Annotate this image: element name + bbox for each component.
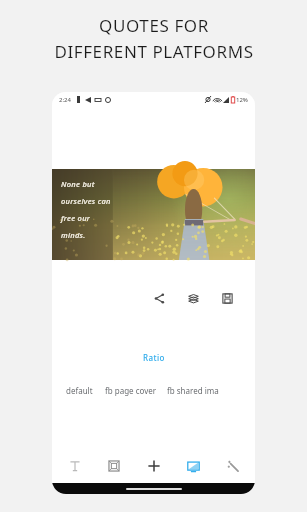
staticText: None but xyxy=(61,179,95,189)
staticText: Ratio xyxy=(143,352,165,363)
button[interactable]: Background xyxy=(176,449,210,483)
button[interactable]: Frame xyxy=(97,449,131,483)
button[interactable]: Text xyxy=(58,449,92,483)
staticText: 12% xyxy=(236,96,248,104)
staticText: fb page cover xyxy=(105,385,157,396)
button[interactable]: Save xyxy=(217,288,237,308)
staticText: QUOTES FOR xyxy=(99,14,209,37)
button[interactable]: Layers xyxy=(183,288,203,308)
staticText: default xyxy=(66,385,93,396)
button[interactable]: fb shared ima xyxy=(167,382,219,399)
button[interactable]: Effects xyxy=(216,449,250,483)
staticText: minds. xyxy=(61,230,86,240)
button[interactable]: Add xyxy=(137,449,171,483)
staticText: ourselves can xyxy=(61,196,111,206)
staticText: DIFFERENT PLATFORMS xyxy=(54,40,254,63)
button[interactable]: fb page cover xyxy=(105,382,157,399)
staticText: free our xyxy=(61,213,91,223)
staticText: fb shared ima xyxy=(167,385,219,396)
button[interactable]: default xyxy=(66,382,93,399)
staticText: 2:24 xyxy=(59,96,71,104)
button[interactable]: Share xyxy=(149,288,169,308)
